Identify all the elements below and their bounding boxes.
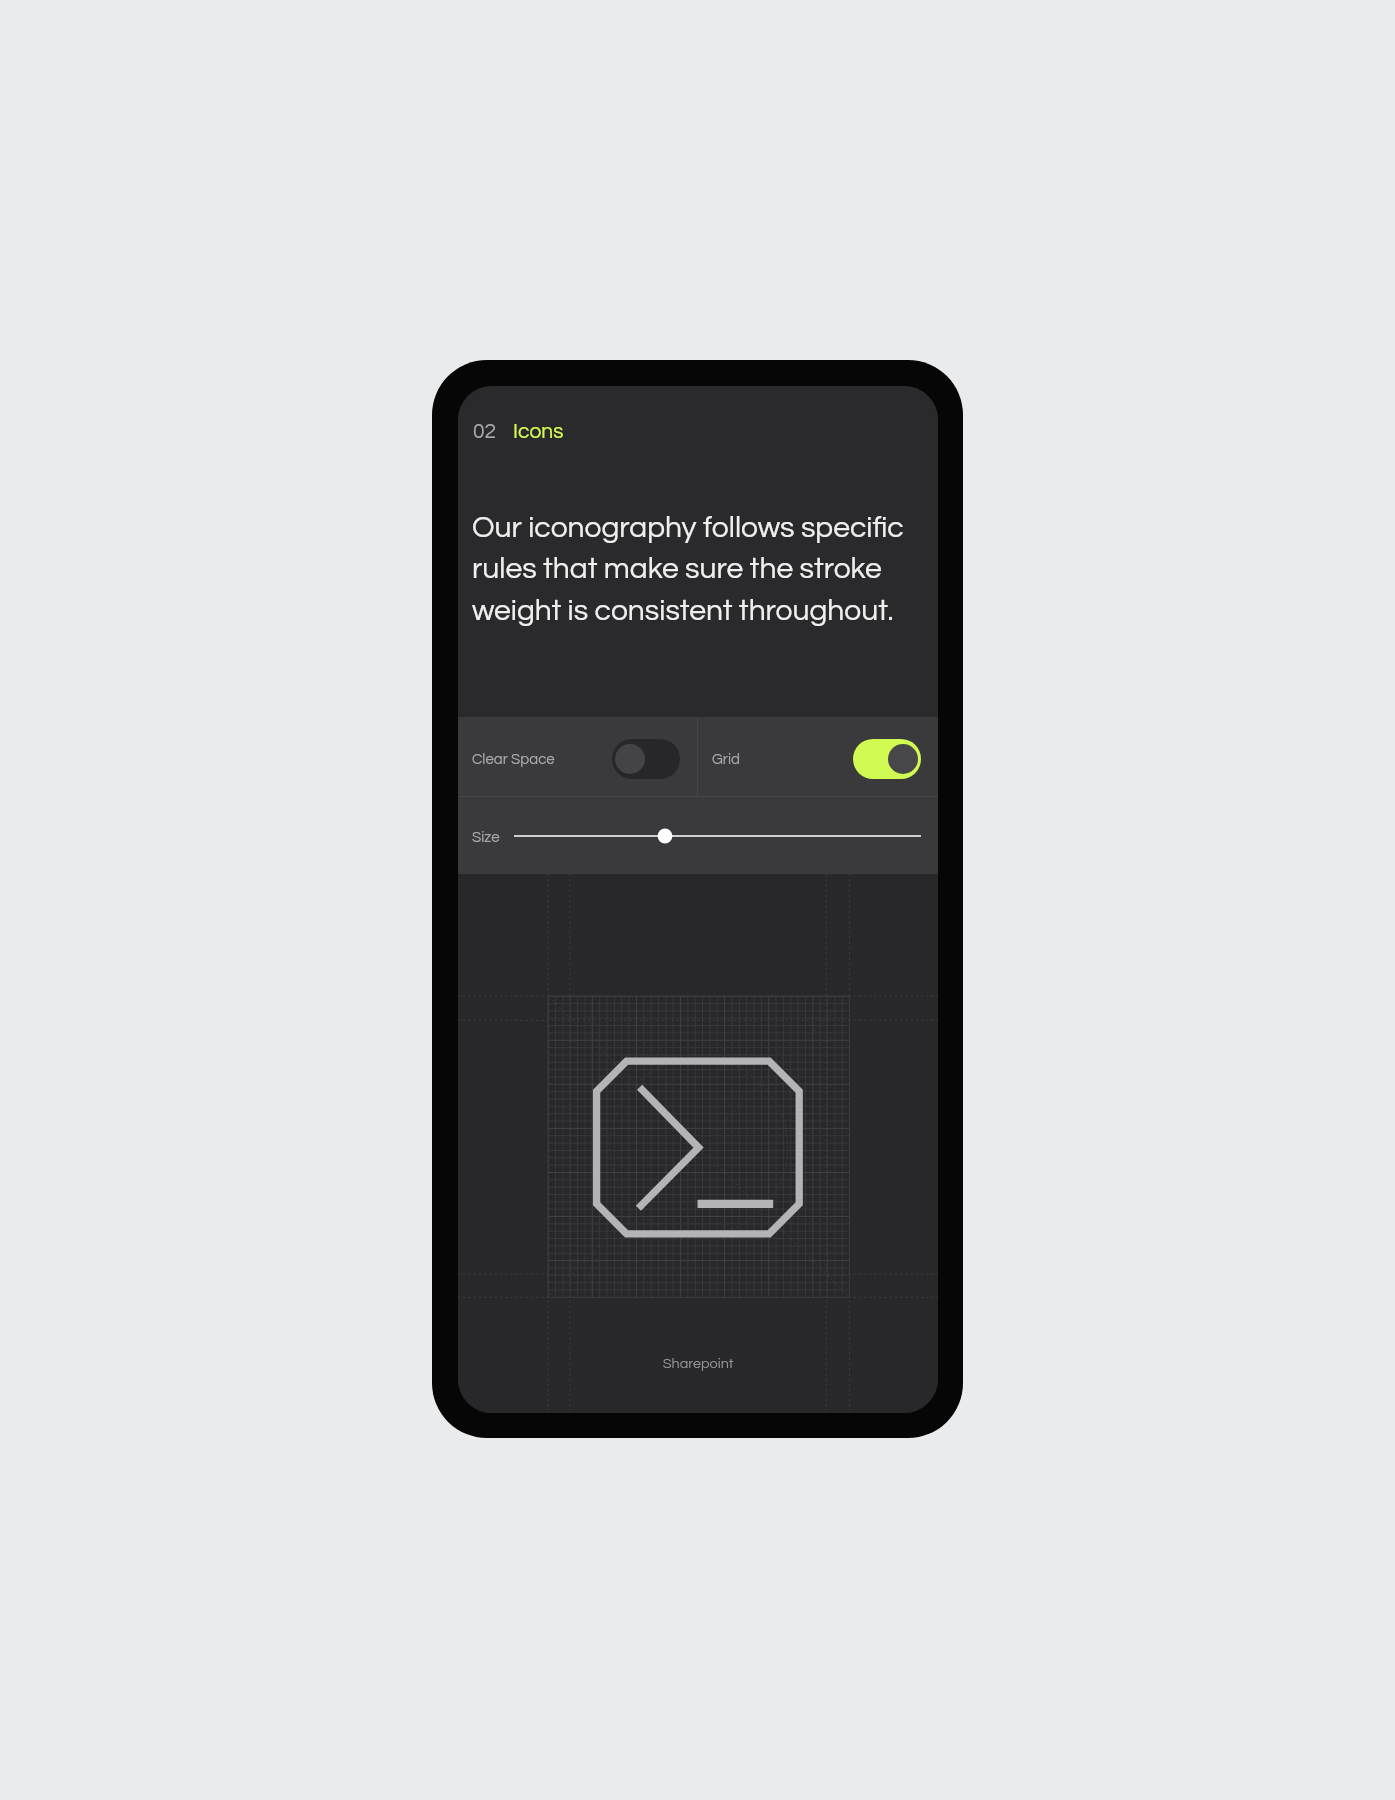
staticText: Icons xyxy=(513,421,564,443)
staticText: Sharepoint xyxy=(458,1356,938,1371)
button[interactable]: Size slider xyxy=(514,820,921,852)
staticText: Our iconography follows specific rules t… xyxy=(472,512,916,627)
staticText: Clear Space xyxy=(472,752,555,767)
staticText: 02 xyxy=(473,421,497,443)
staticText: Grid xyxy=(712,752,741,767)
button[interactable]: Grid switch xyxy=(853,739,921,779)
button[interactable]: Clear Space xyxy=(458,717,697,796)
button[interactable]: Grid xyxy=(698,717,938,796)
button[interactable]: 02 xyxy=(473,421,564,443)
button[interactable]: Clear Space switch xyxy=(612,739,680,779)
staticText: Size xyxy=(472,830,500,845)
button[interactable]: Sharepoint terminal icon preview xyxy=(458,874,938,1413)
